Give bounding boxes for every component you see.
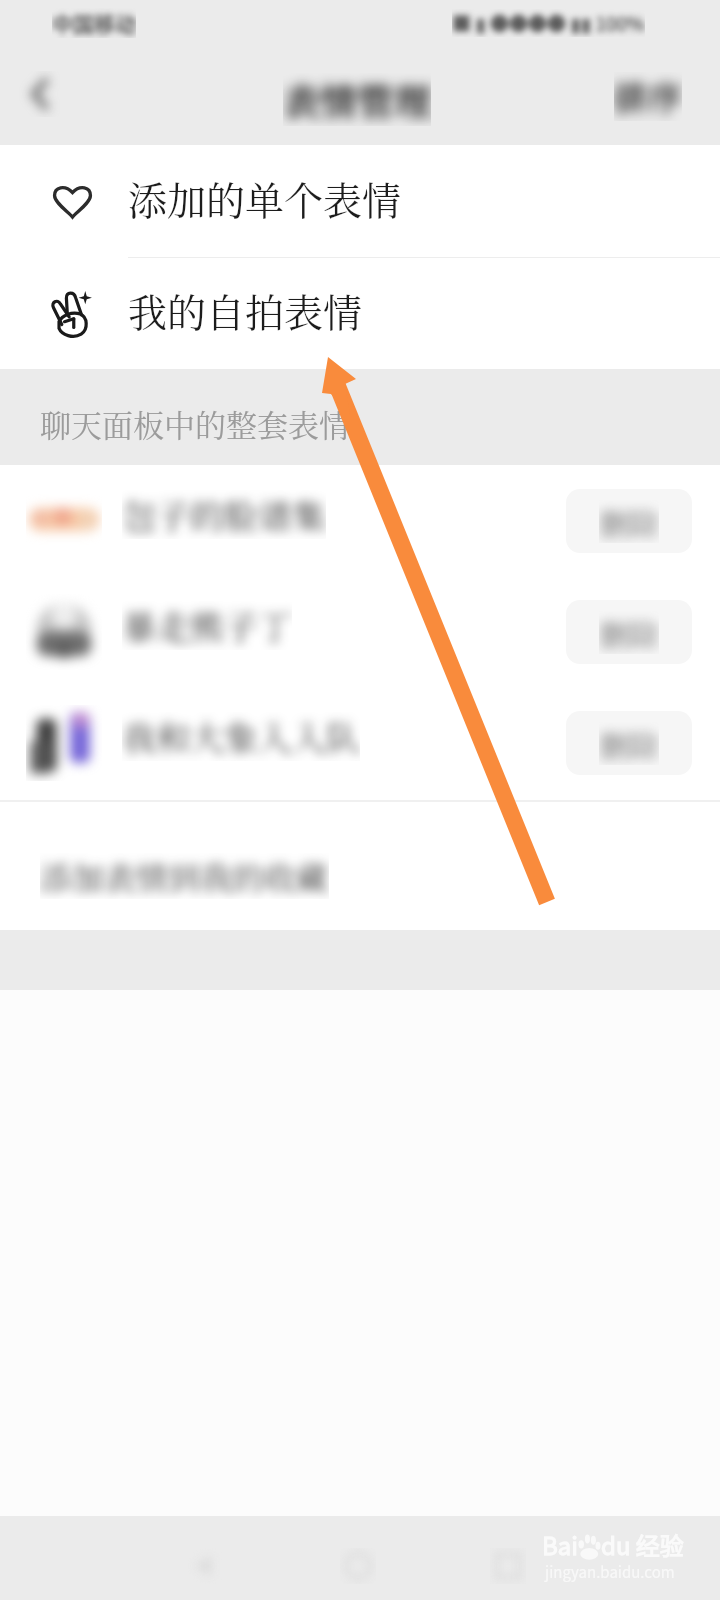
button[interactable]: 排序 bbox=[600, 58, 696, 135]
button[interactable]: 删除 bbox=[566, 489, 692, 553]
button[interactable]: 删除 bbox=[566, 600, 692, 664]
button[interactable]: 添加表情到我的收藏 bbox=[0, 802, 720, 930]
staticText: 删除 bbox=[599, 611, 659, 654]
staticText: jingyan.baidu.com bbox=[545, 1561, 675, 1583]
button[interactable]: 我和大象入入队 bbox=[0, 687, 720, 798]
staticText: 我的自拍表情 bbox=[128, 282, 363, 338]
staticText: 添加的单个表情 bbox=[128, 170, 402, 226]
button[interactable]: 暴走熊子丁 bbox=[0, 576, 720, 687]
staticText: 删除 bbox=[599, 500, 659, 543]
staticText: du 经验 bbox=[601, 1527, 684, 1562]
staticText: Bai bbox=[542, 1527, 578, 1562]
button[interactable]: 添加的单个表情 bbox=[0, 145, 720, 257]
staticText: 排序 bbox=[614, 72, 682, 121]
button[interactable]: Back bbox=[6, 60, 74, 128]
staticText: 暴走熊子丁 bbox=[122, 601, 292, 650]
staticText: 中国移动 bbox=[52, 8, 136, 38]
staticText: 表情管理 bbox=[283, 73, 431, 126]
staticText: 我和大象入入队 bbox=[122, 712, 360, 761]
staticText: ■ ▮ ●●●● ▮▮ 100% bbox=[452, 9, 645, 37]
staticText: 包子的脸谱集 bbox=[122, 490, 326, 539]
button[interactable]: 包子的脸谱集 bbox=[0, 465, 720, 576]
staticText: 删除 bbox=[599, 722, 659, 765]
button[interactable]: 删除 bbox=[566, 711, 692, 775]
button[interactable]: 我的自拍表情 bbox=[0, 258, 720, 369]
staticText: 添加表情到我的收藏 bbox=[40, 853, 329, 899]
staticText: 聊天面板中的整套表情 bbox=[40, 401, 350, 446]
